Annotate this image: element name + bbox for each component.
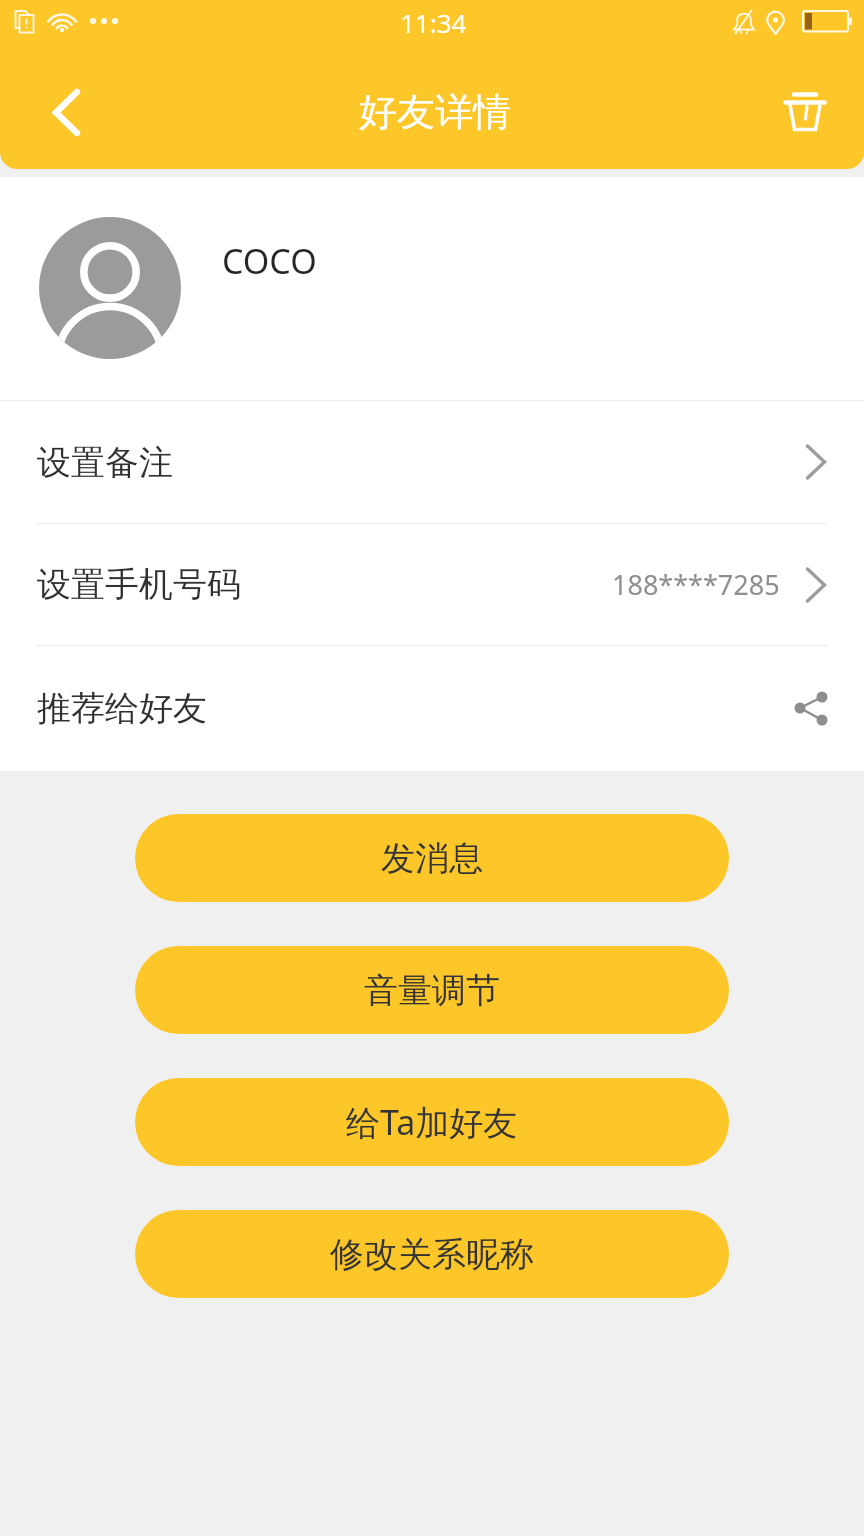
button[interactable]: 推荐给好友 [0, 646, 864, 770]
staticText: 设置手机号码 [37, 563, 241, 606]
staticText: 188****7285 [612, 566, 780, 603]
staticText: 11:34 [400, 5, 467, 40]
staticText: 推荐给好友 [37, 687, 207, 730]
staticText: 设置备注 [37, 441, 173, 484]
button[interactable]: 修改关系昵称 [135, 1210, 729, 1298]
button[interactable]: COCO [0, 177, 864, 400]
staticText: 音量调节 [364, 969, 500, 1012]
button[interactable]: 发消息 [135, 814, 729, 902]
button[interactable]: 设置手机号码 [0, 524, 864, 645]
staticText: 发消息 [381, 837, 483, 880]
button[interactable]: Delete [760, 56, 864, 168]
staticText: 好友详情 [359, 88, 511, 136]
staticText: 给Ta加好友 [346, 1099, 518, 1145]
button[interactable]: 音量调节 [135, 946, 729, 1034]
button[interactable]: 设置备注 [0, 401, 864, 523]
button[interactable]: 给Ta加好友 [135, 1078, 729, 1166]
staticText: 修改关系昵称 [330, 1233, 534, 1276]
button[interactable]: Back [0, 56, 110, 168]
staticText: COCO [222, 238, 317, 284]
